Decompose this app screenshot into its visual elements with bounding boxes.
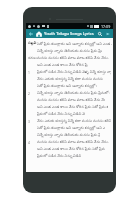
staticText: ఏదో ప్రేమ కబుర్లాడు అని అన్నారు కన్నుల్ల…: [37, 125, 105, 131]
staticText: నేను ఎదురు చూస్తన్న నిన్నే కదా మనసు మనసు…: [37, 76, 103, 82]
staticText: అని ఎంత ఎంత కాలం నేను కోరిన ప్రేమ ఏదో ప్…: [37, 62, 88, 68]
staticText: ఏదో ప్రేమ కబుర్లాడు అని అన్నారు కన్నుల్ల…: [37, 41, 112, 47]
staticText: మనసు మనసు కలిసి మాట మాట కలిపి నేను నేను …: [37, 55, 109, 61]
button[interactable]: Share: [105, 31, 111, 37]
button[interactable]: Search: [97, 31, 103, 37]
staticText: 3: [28, 119, 30, 123]
staticText: నిన్నే చూస్తు న్నాను తెలియదు మనసు ప్రేమ …: [37, 132, 100, 138]
button[interactable]: Back: [26, 29, 113, 38]
staticText: మనసు మనసు కలిసి మాట మాట కలిపి నేను నేను …: [37, 97, 105, 103]
staticText: అని ఎంత ఎంత కాలం నేను కోరిన ప్రేమ ఏదో ప్…: [37, 104, 108, 110]
staticText: పల్లవి: [28, 41, 37, 46]
staticText: మనసు మనసు కలిసి మాట మాట కలిపి నేను నేను …: [37, 139, 109, 145]
staticText: ప్రేమలో పడిన నేను నిన్ను విడిచి వెళ్ళ ని…: [37, 153, 81, 159]
staticText: నేను ఎదురు చూస్తన్న నిన్నే కదా మనసు మనసు…: [37, 118, 111, 124]
staticText: 1: [28, 70, 30, 74]
button[interactable]: Home: [36, 31, 42, 37]
staticText: నిన్నే చూస్తు న్నాను తెలియదు మనసు ప్రేమ …: [37, 90, 110, 96]
staticText: అని ఎంత ఎంత కాలం నేను కోరిన ప్రేమ ఏదో ప్…: [37, 146, 105, 152]
staticText: నిన్నే చూస్తు న్నాను తెలియదు మనసు ప్రేమ …: [37, 48, 102, 54]
staticText: 17:09: [101, 24, 111, 29]
button[interactable]: Back: [28, 31, 34, 37]
staticText: 4: [28, 140, 30, 144]
staticText: చరణం: [28, 56, 37, 60]
staticText: ప్రేమలో పడిన నేను నిన్ను విడిచి వెళ్ళ ని…: [37, 69, 111, 75]
staticText: Youth Telugu Songs Lyrics: [44, 31, 94, 36]
staticText: ప్రేమలో పడిన నేను నిన్ను విడిచి వెళ్ళ ని…: [37, 111, 85, 117]
staticText: ఏదో ప్రేమ కబుర్లాడు అని అన్నారు కన్నుల్ల…: [37, 83, 97, 89]
staticText: 2: [28, 91, 30, 95]
